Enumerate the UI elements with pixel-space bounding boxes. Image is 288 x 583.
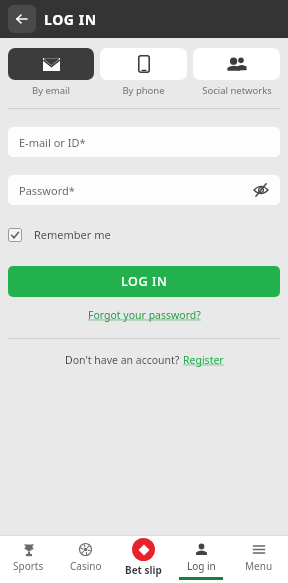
staticText: Don't have an account? (65, 353, 183, 367)
staticText: E-mail or ID* (19, 135, 86, 150)
button[interactable]: By phone (100, 48, 187, 97)
staticText: Log in (187, 559, 216, 573)
button[interactable]: By email (8, 48, 94, 97)
staticText: LOG IN (44, 10, 97, 29)
staticText: By phone (122, 84, 165, 97)
button[interactable]: LOG IN (8, 266, 280, 297)
staticText: Bet slip (125, 563, 162, 577)
button[interactable]: Sports (0, 536, 57, 583)
button[interactable]: Register (183, 353, 224, 367)
button[interactable]: E-mail or ID* (8, 127, 280, 157)
button[interactable]: Forgot your password? (88, 308, 201, 322)
staticText: Sports (13, 559, 44, 573)
button[interactable]: Back (8, 5, 36, 33)
staticText: LOG IN (121, 273, 168, 290)
staticText: Password* (19, 183, 75, 198)
button[interactable]: Password* (8, 175, 280, 205)
button[interactable]: Bet slip (114, 536, 172, 583)
staticText: Remember me (34, 227, 111, 242)
button[interactable]: Casino (57, 536, 114, 583)
button[interactable]: Show password (250, 179, 272, 201)
staticText: Social networks (202, 84, 272, 97)
staticText: By email (32, 84, 70, 97)
button[interactable]: Remember me (8, 227, 111, 242)
button[interactable]: Menu (230, 536, 288, 583)
button[interactable]: Social networks (193, 48, 280, 97)
button[interactable]: Log in (172, 536, 230, 583)
staticText: Casino (70, 559, 102, 573)
staticText: Menu (245, 559, 273, 573)
